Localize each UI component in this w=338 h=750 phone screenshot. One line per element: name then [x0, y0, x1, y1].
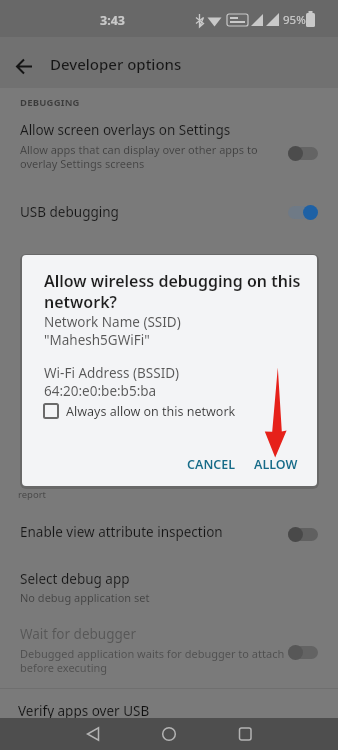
staticText: 3:43	[100, 12, 125, 29]
staticText: Developer options	[50, 54, 182, 74]
button[interactable]	[77, 718, 109, 750]
button[interactable]: Select debug app	[0, 564, 338, 610]
staticText: Debugged application waits for debugger …	[20, 646, 285, 675]
staticText: report	[18, 488, 47, 501]
button[interactable]: Enable view attribute inspection	[0, 516, 338, 556]
staticText: No debug application set	[20, 590, 150, 605]
staticText: Enable view attribute inspection	[20, 523, 223, 541]
staticText: DEBUGGING	[20, 96, 80, 109]
staticText: Always allow on this network	[66, 403, 236, 420]
staticText: Network Name (SSID) "Mahesh5GWiFi"	[44, 313, 181, 349]
button[interactable]: Always allow on this network	[36, 396, 256, 426]
staticText: Select debug app	[20, 570, 130, 588]
button[interactable]: CANCEL	[174, 446, 242, 478]
staticText: CANCEL	[187, 456, 236, 473]
staticText: USB debugging	[20, 203, 119, 221]
staticText: Verify apps over USB	[18, 702, 150, 720]
button[interactable]	[153, 718, 185, 750]
staticText: Wi-Fi Address (BSSID) 64:20:e0:be:b5:ba	[44, 364, 180, 400]
staticText: Wait for debugger	[20, 625, 136, 643]
button[interactable]: Allow screen overlays on Settings	[0, 118, 338, 180]
staticText: Allow wireless debugging on this network…	[44, 270, 301, 313]
button[interactable]: USB debugging	[0, 196, 338, 236]
button[interactable]	[229, 718, 261, 750]
button[interactable]: ALLOW	[244, 446, 308, 478]
button[interactable]: Verify apps over USB	[0, 696, 338, 718]
staticText: Allow apps that can display over other a…	[20, 142, 258, 171]
staticText: 95%	[283, 12, 306, 28]
staticText: Allow screen overlays on Settings	[20, 121, 231, 139]
staticText: ALLOW	[254, 456, 298, 473]
button[interactable]: Wait for debugger	[0, 616, 338, 682]
button[interactable]	[10, 55, 40, 85]
